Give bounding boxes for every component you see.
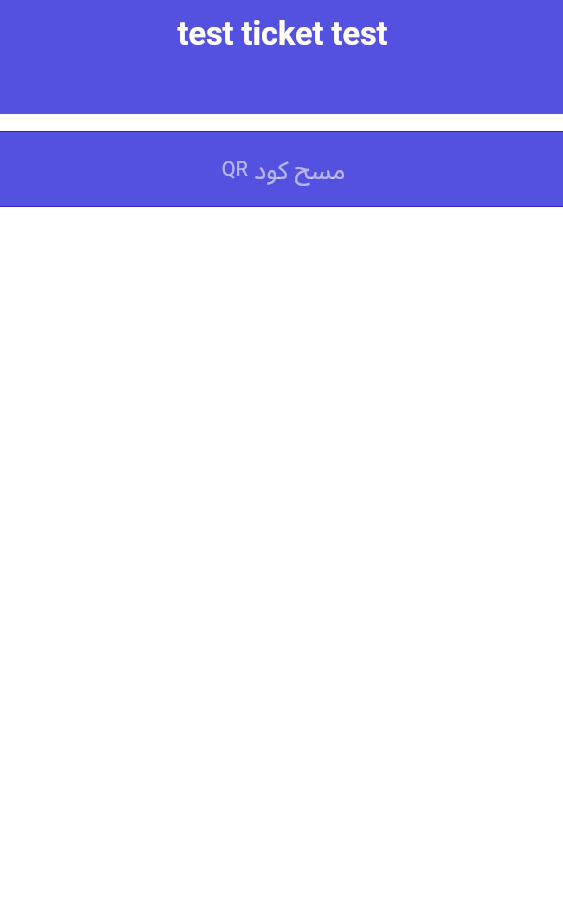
button[interactable]: مسح كود QR — [0, 131, 563, 207]
staticText: مسح كود QR — [2, 152, 563, 186]
staticText: test ticket test — [1, 15, 563, 53]
